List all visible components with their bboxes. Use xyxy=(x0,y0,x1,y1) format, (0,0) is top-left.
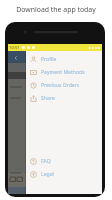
staticText: Payment Methods xyxy=(41,69,85,76)
button[interactable]: FAQ xyxy=(26,155,102,168)
staticText: Previous Orders xyxy=(41,82,80,89)
staticText: Legal xyxy=(41,171,54,178)
button[interactable]: Share xyxy=(26,92,102,105)
button[interactable]: Legal xyxy=(26,168,102,181)
staticText: Download the app today xyxy=(16,5,96,14)
staticText: FAQ xyxy=(41,158,51,165)
button[interactable]: Profile xyxy=(26,53,102,66)
staticText: 10:51 xyxy=(9,45,20,51)
staticText: Share xyxy=(41,95,55,102)
staticText: 10:51 xyxy=(9,45,20,51)
button[interactable]: Back xyxy=(11,53,21,63)
staticText: Profile xyxy=(41,56,57,63)
button[interactable]: Previous Orders xyxy=(26,79,102,92)
button[interactable]: Payment Methods xyxy=(26,66,102,79)
